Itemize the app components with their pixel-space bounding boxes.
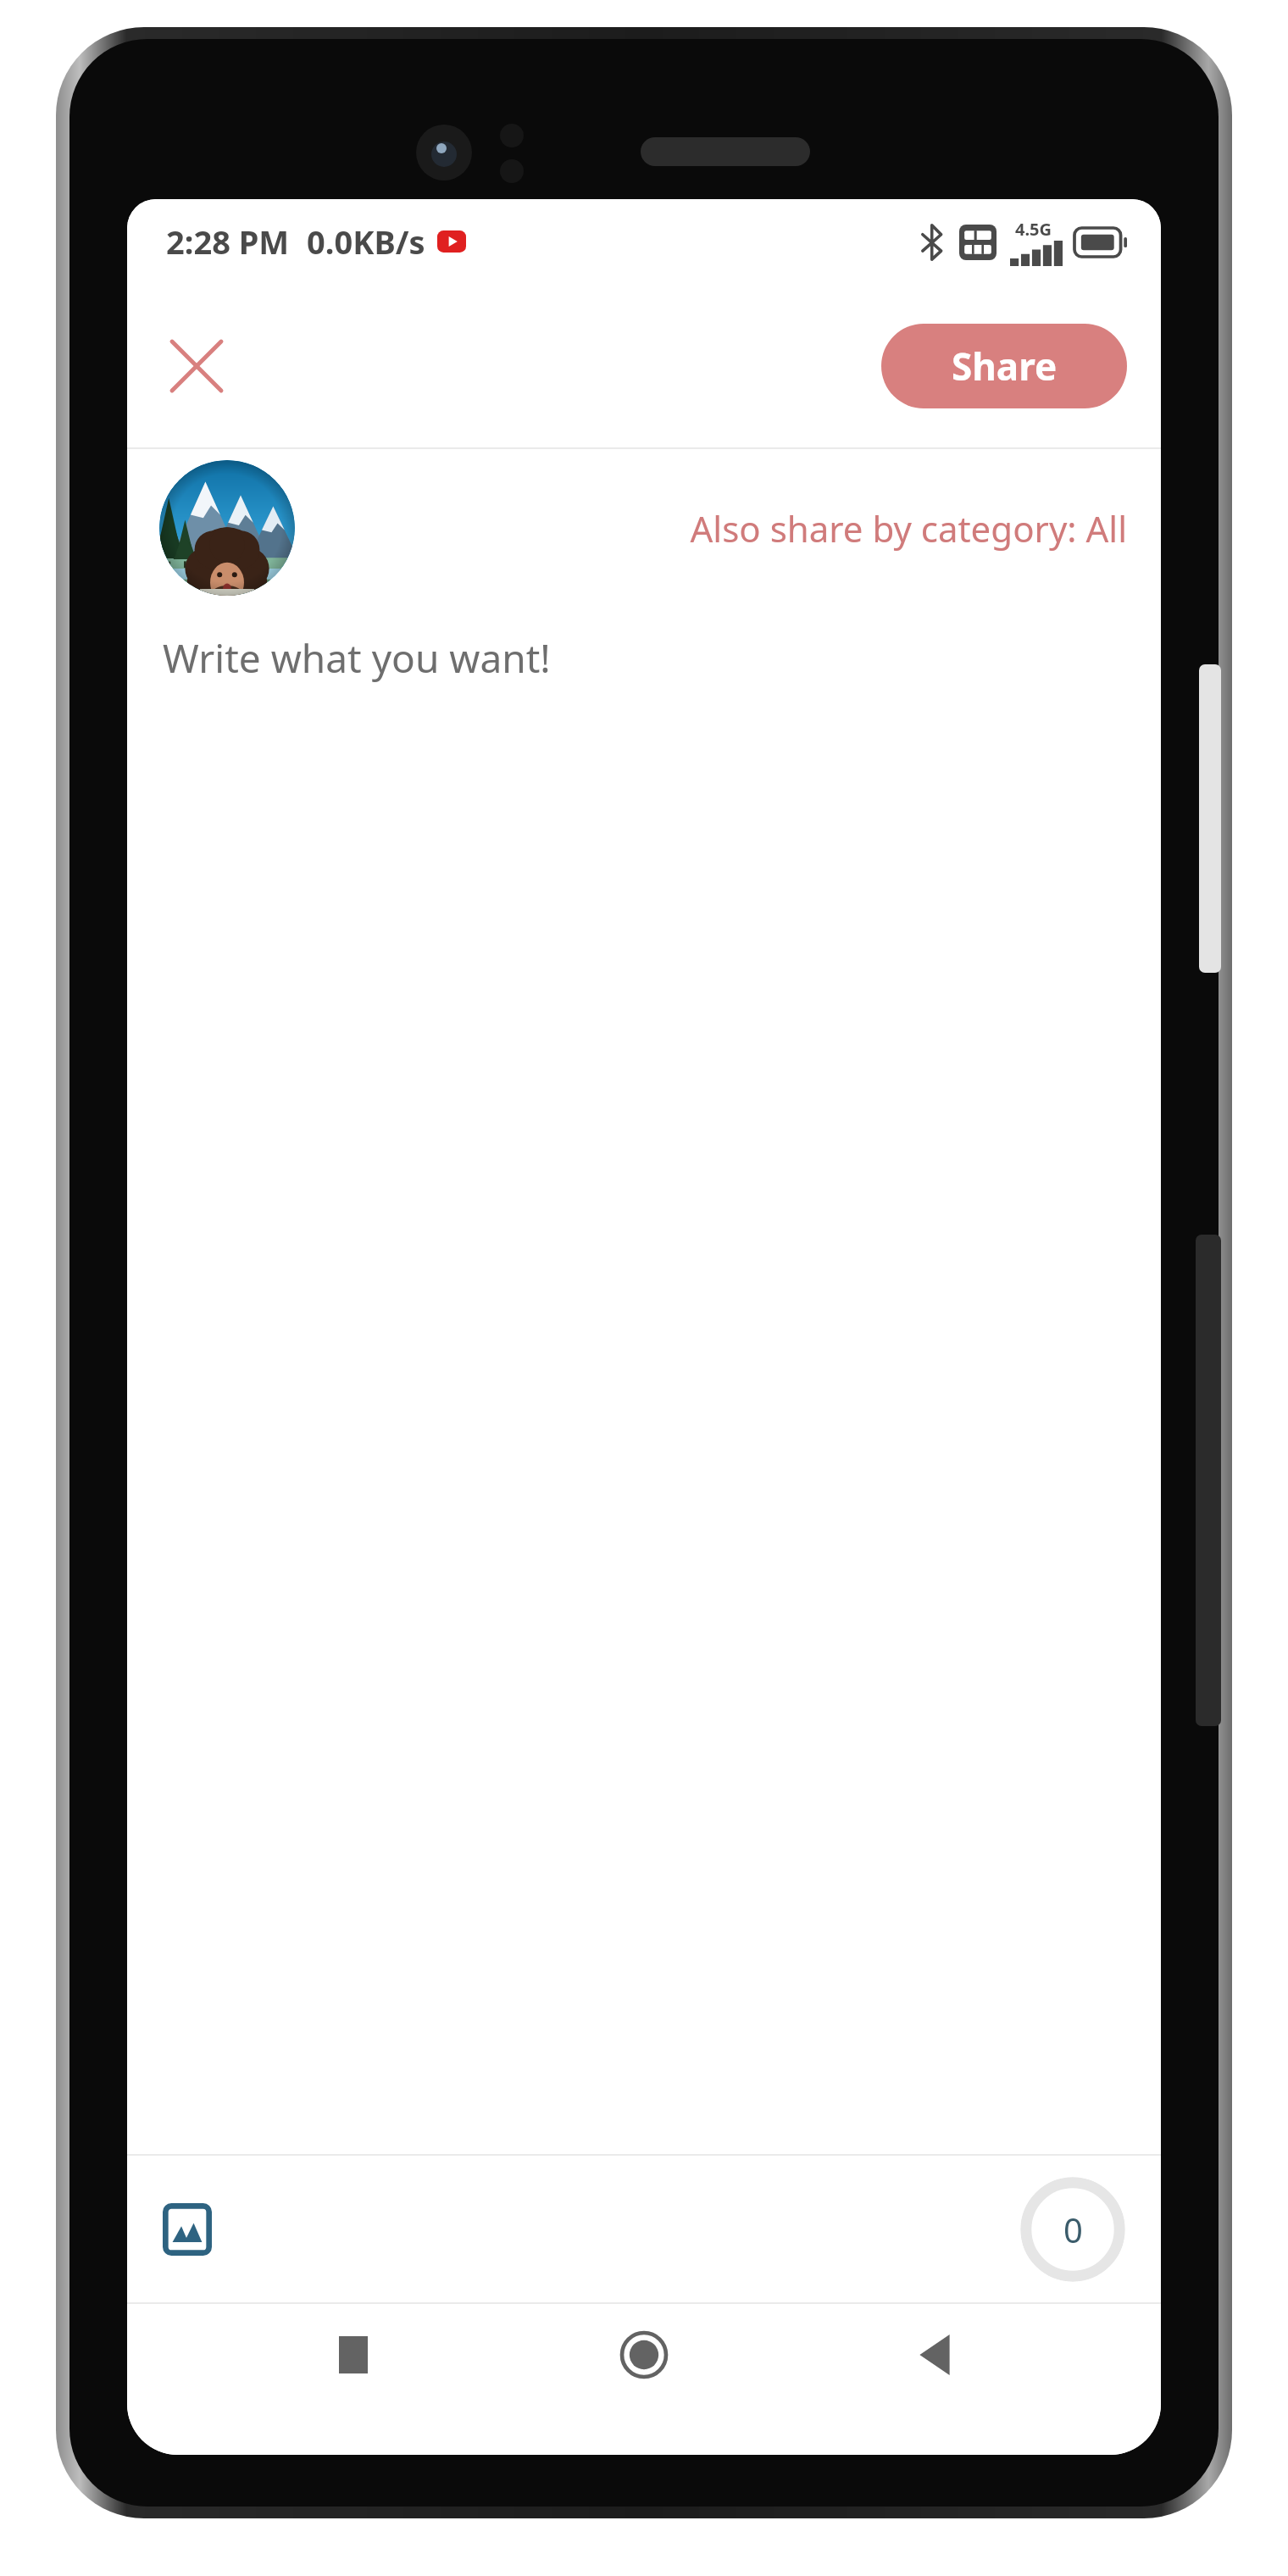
button[interactable]: Back xyxy=(880,2304,990,2406)
staticText: 0 xyxy=(1063,2207,1083,2252)
staticText: Share xyxy=(952,341,1058,391)
staticText: 0.0KB/s xyxy=(307,219,425,264)
button[interactable]: Share xyxy=(881,324,1127,408)
button[interactable]: 0 xyxy=(1020,2177,1125,2282)
button[interactable]: Also share by category: All xyxy=(685,496,1132,561)
staticText: 4.5G xyxy=(1015,218,1052,241)
button[interactable]: Recent apps xyxy=(298,2304,408,2406)
button[interactable]: Add image xyxy=(141,2183,234,2276)
staticText: Also share by category: All xyxy=(690,504,1127,552)
button[interactable]: Write what you want! xyxy=(127,607,1161,708)
button[interactable]: Home xyxy=(589,2304,699,2406)
button[interactable]: Close xyxy=(146,315,247,417)
staticText: Write what you want! xyxy=(163,631,551,685)
button[interactable]: Profile picture xyxy=(159,460,295,596)
staticText: 2:28 PM xyxy=(166,219,290,264)
